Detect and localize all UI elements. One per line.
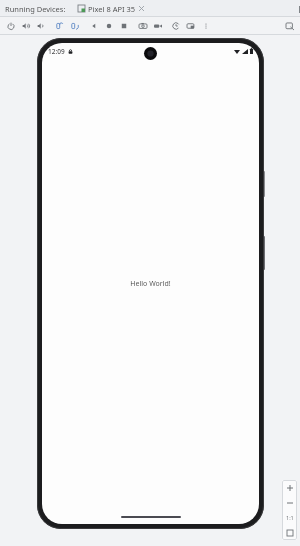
button[interactable]: Recents [116,17,131,35]
staticText: Hello World! [130,279,171,289]
button[interactable]: History [168,17,183,35]
button[interactable]: Zoom to fit [282,525,297,540]
button[interactable]: Zoom in [282,480,297,495]
staticText: Running Devices: [5,4,66,14]
button[interactable]: Back [86,17,101,35]
staticText: Pixel 8 API 35 [88,4,136,14]
button[interactable]: Record screen [150,17,165,35]
staticText: 12:09 [48,47,65,56]
button[interactable]: Pixel 8 API 35 [74,0,300,17]
button[interactable]: Power [3,17,18,35]
button[interactable]: Volume down [33,17,48,35]
button[interactable]: Zoom out [282,495,297,510]
button[interactable]: Rotate right [67,17,82,35]
staticText: 1:1 [286,514,294,521]
button[interactable]: 1:1 [282,510,297,525]
button[interactable]: Display mode [183,17,198,35]
button[interactable]: Rotate left [52,17,67,35]
button[interactable]: Zoom to fit [282,17,297,35]
button[interactable]: Home [101,17,116,35]
button[interactable]: More [198,17,213,35]
button[interactable]: Volume up [18,17,33,35]
button[interactable]: Screenshot [135,17,150,35]
